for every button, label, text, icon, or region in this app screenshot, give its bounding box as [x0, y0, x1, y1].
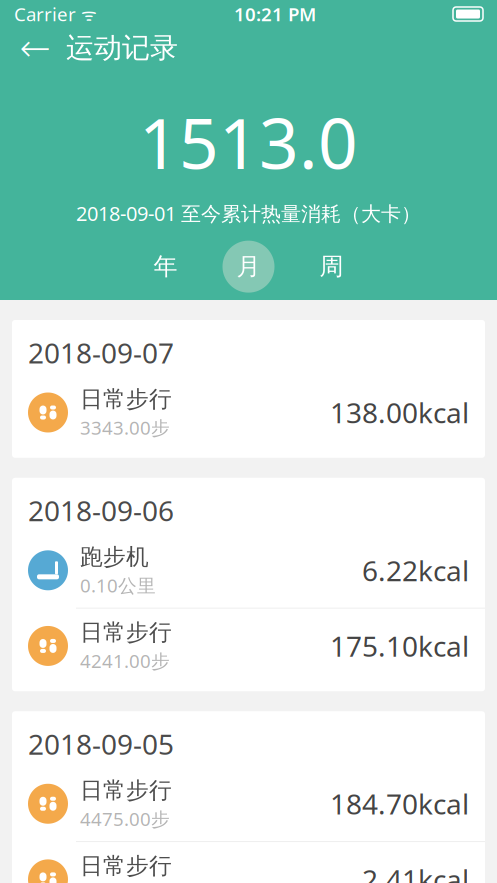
- button[interactable]: 返回: [18, 31, 52, 65]
- staticText: 2018-09-06: [28, 492, 174, 529]
- staticText: 2.41kcal: [362, 861, 469, 883]
- button[interactable]: 年: [124, 239, 207, 295]
- staticText: 2018-09-05: [28, 725, 174, 762]
- button[interactable]: 月: [207, 239, 290, 295]
- staticText: 10:21 PM: [234, 2, 316, 26]
- staticText: 184.70kcal: [330, 785, 469, 822]
- staticText: 138.00kcal: [330, 394, 469, 431]
- staticText: 4475.00步: [80, 806, 170, 831]
- staticText: ᯤ: [76, 2, 97, 25]
- button[interactable]: 跑步机: [12, 533, 485, 608]
- staticText: 4241.00步: [80, 648, 170, 673]
- button[interactable]: 周: [290, 239, 373, 295]
- button[interactable]: 日常步行: [12, 766, 485, 841]
- staticText: 跑步机: [80, 543, 149, 571]
- staticText: 月: [236, 252, 260, 281]
- button[interactable]: 日常步行: [12, 841, 485, 883]
- staticText: 0.10公里: [80, 573, 156, 598]
- staticText: 日常步行: [80, 852, 172, 880]
- button[interactable]: 日常步行: [12, 375, 485, 450]
- staticText: 运动记录: [66, 31, 178, 65]
- staticText: 2018-09-01 至今累计热量消耗（大卡）: [76, 200, 421, 227]
- staticText: 175.10kcal: [330, 627, 469, 665]
- staticText: 1513.0: [139, 96, 358, 188]
- staticText: 日常步行: [80, 385, 172, 413]
- staticText: 3343.00步: [80, 415, 170, 440]
- button[interactable]: 日常步行: [12, 608, 485, 683]
- staticText: 2018-09-07: [28, 334, 174, 371]
- staticText: 周: [319, 252, 343, 281]
- staticText: 日常步行: [80, 619, 172, 646]
- staticText: 6.22kcal: [362, 552, 469, 589]
- staticText: 日常步行: [80, 776, 172, 804]
- staticText: 年: [153, 252, 177, 281]
- staticText: ←: [19, 27, 50, 69]
- staticText: Carrier: [14, 2, 76, 26]
